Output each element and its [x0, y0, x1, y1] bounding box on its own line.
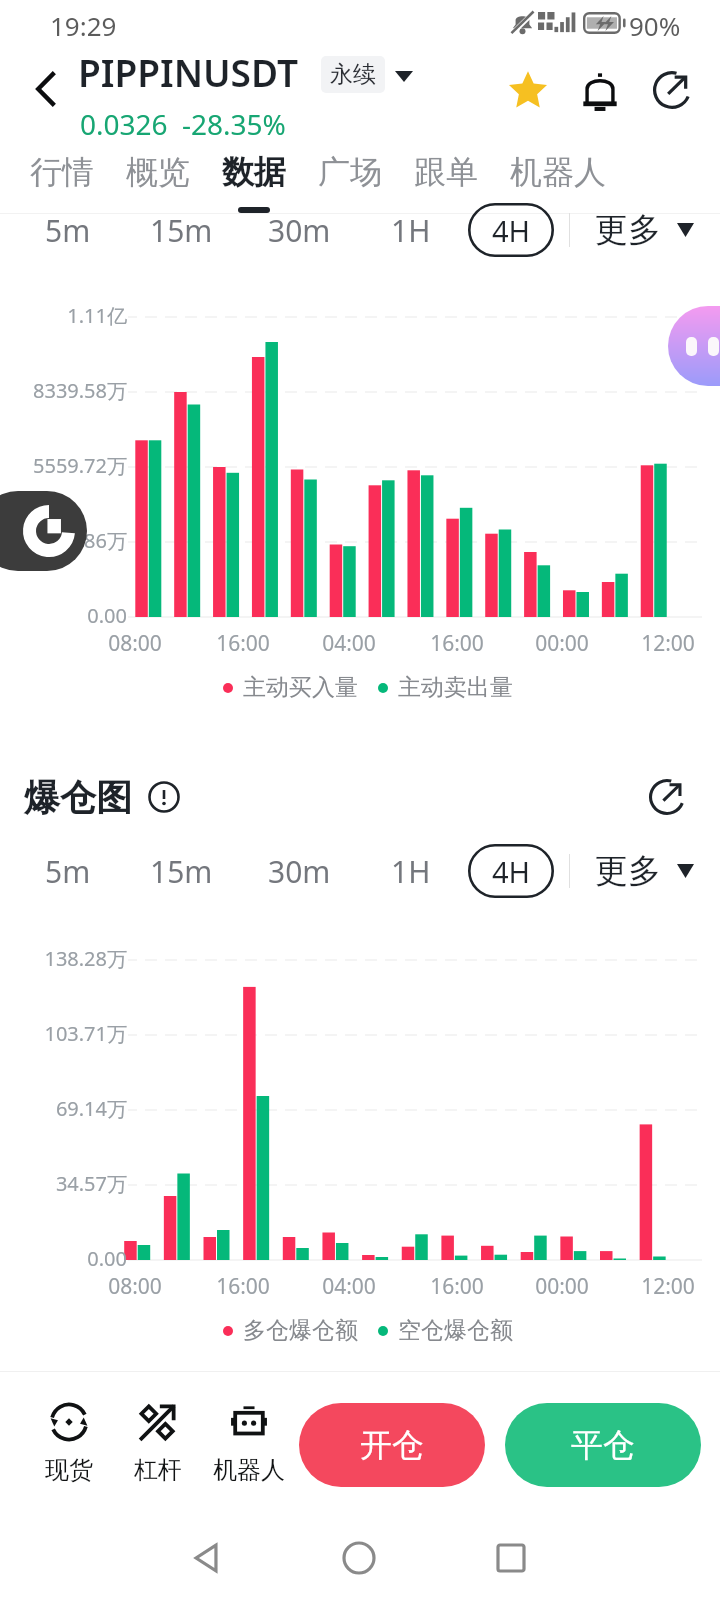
button[interactable]: Alerts [572, 62, 628, 118]
staticText: 机器人 [213, 1455, 285, 1485]
button[interactable]: 5m [22, 844, 114, 898]
staticText: 00:00 [502, 1272, 622, 1301]
button[interactable]: Logo [0, 491, 87, 571]
staticText: PIPPINUSDT [78, 47, 299, 97]
staticText: 1H [391, 210, 431, 251]
staticText: 0.0326 [80, 105, 168, 143]
staticText: 机器人 [510, 152, 606, 192]
staticText: 0.00 [0, 1245, 127, 1272]
button[interactable]: Recents [481, 1528, 541, 1588]
staticText: 103.71万 [0, 1020, 127, 1047]
button[interactable]: 杠杆 [110, 1399, 206, 1485]
button[interactable]: 永续 [321, 56, 385, 93]
button[interactable]: 更多 [593, 844, 696, 898]
button[interactable]: 现货 [21, 1399, 117, 1485]
staticText: 4H [492, 211, 531, 250]
staticText: 30m [268, 210, 331, 251]
button[interactable]: 平仓 [505, 1403, 701, 1487]
staticText: 跟单 [414, 152, 478, 192]
staticText: 00:00 [502, 629, 622, 658]
staticText: 19:29 [50, 8, 117, 43]
staticText: 04:00 [289, 1272, 409, 1301]
button[interactable]: 广场 [302, 152, 398, 213]
staticText: 12:00 [608, 629, 720, 658]
staticText: 16:00 [183, 629, 303, 658]
staticText: 8339.58万 [0, 377, 127, 404]
button[interactable]: 概览 [110, 152, 206, 213]
button[interactable]: 更多 [593, 203, 696, 257]
staticText: 行情 [30, 152, 94, 192]
staticText: 开仓 [360, 1425, 424, 1465]
staticText: 5m [45, 210, 91, 251]
staticText: 数据 [222, 152, 286, 192]
button[interactable]: Assistant [668, 306, 720, 386]
button[interactable]: Back [177, 1528, 237, 1588]
button[interactable]: 1H [365, 203, 457, 257]
button[interactable]: Share chart [640, 770, 694, 824]
staticText: 04:00 [289, 629, 409, 658]
staticText: 16:00 [397, 629, 517, 658]
button[interactable]: 15m [135, 844, 227, 898]
button[interactable]: Back [17, 60, 74, 117]
staticText: 主动卖出量 [398, 673, 513, 702]
staticText: 杠杆 [134, 1455, 182, 1485]
staticText: 概览 [126, 152, 190, 192]
staticText: 16:00 [397, 1272, 517, 1301]
button[interactable]: 数据 [206, 152, 302, 213]
staticText: 2779.86万 [0, 527, 127, 554]
button[interactable]: 5m [22, 203, 114, 257]
staticText: 主动买入量 [243, 673, 358, 702]
button[interactable]: Share [644, 62, 700, 118]
button[interactable]: 4H [468, 203, 554, 257]
staticText: 1.11亿 [0, 302, 127, 329]
button[interactable]: 1H [365, 844, 457, 898]
staticText: -28.35% [182, 105, 286, 143]
button[interactable]: Favorite [500, 62, 556, 118]
button[interactable]: 机器人 [494, 152, 622, 213]
button[interactable]: 机器人 [201, 1399, 297, 1485]
staticText: 5559.72万 [0, 452, 127, 479]
staticText: 08:00 [75, 1272, 195, 1301]
staticText: 多仓爆仓额 [243, 1316, 358, 1345]
staticText: 1H [391, 851, 431, 892]
staticText: 永续 [330, 60, 376, 89]
staticText: 16:00 [183, 1272, 303, 1301]
staticText: 90% [629, 8, 681, 43]
staticText: 0.00 [0, 602, 127, 629]
staticText: 更多 [595, 209, 661, 251]
staticText: 08:00 [75, 629, 195, 658]
staticText: 5m [45, 851, 91, 892]
staticText: 更多 [595, 850, 661, 892]
button[interactable]: 开仓 [299, 1403, 485, 1487]
button[interactable]: 行情 [14, 152, 110, 213]
button[interactable]: 30m [253, 203, 345, 257]
button[interactable]: Home [329, 1528, 389, 1588]
staticText: 平仓 [571, 1425, 635, 1465]
staticText: 爆仓图 [24, 775, 132, 820]
staticText: 广场 [318, 152, 382, 192]
button[interactable]: 跟单 [398, 152, 494, 213]
staticText: 15m [150, 210, 213, 251]
staticText: 12:00 [608, 1272, 720, 1301]
button[interactable]: 4H [468, 844, 554, 898]
button[interactable]: 15m [135, 203, 227, 257]
staticText: 30m [268, 851, 331, 892]
staticText: 34.57万 [0, 1170, 127, 1197]
button[interactable]: 爆仓图 [24, 772, 180, 822]
staticText: 138.28万 [0, 945, 127, 972]
staticText: 15m [150, 851, 213, 892]
staticText: 现货 [45, 1455, 93, 1485]
staticText: 4H [492, 852, 531, 891]
staticText: 空仓爆仓额 [398, 1316, 513, 1345]
button[interactable]: 30m [253, 844, 345, 898]
staticText: 69.14万 [0, 1095, 127, 1122]
